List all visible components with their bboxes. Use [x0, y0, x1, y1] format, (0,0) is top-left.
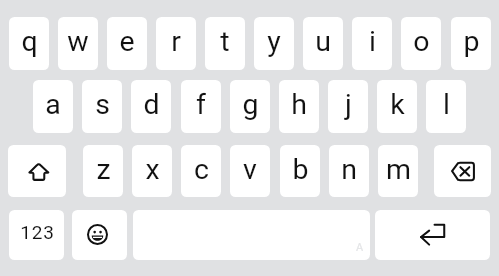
button[interactable]: a [33, 80, 73, 133]
staticText: e [119, 25, 135, 58]
staticText: 123 [20, 221, 55, 243]
button[interactable]: m [378, 145, 418, 197]
staticText: j [345, 88, 352, 121]
staticText: y [267, 25, 281, 58]
button[interactable]: w [58, 17, 98, 70]
button[interactable]: z [83, 145, 123, 197]
button[interactable]: v [230, 145, 270, 197]
button[interactable]: k [377, 80, 417, 133]
staticText: c [194, 153, 209, 186]
staticText: i [369, 25, 376, 58]
staticText: d [143, 88, 160, 121]
button[interactable]: n [329, 145, 369, 197]
staticText: q [21, 25, 38, 58]
button[interactable]: u [303, 17, 343, 70]
button[interactable]: c [181, 145, 221, 197]
staticText: k [390, 88, 405, 121]
button[interactable]: j [328, 80, 368, 133]
staticText: f [196, 88, 206, 121]
button[interactable]: x [132, 145, 172, 197]
staticText: g [242, 88, 259, 121]
button[interactable]: l [426, 80, 466, 133]
button[interactable]: t [205, 17, 245, 70]
button[interactable]: o [401, 17, 441, 70]
staticText: x [145, 153, 160, 186]
button[interactable]: p [451, 17, 491, 70]
button[interactable]: s [82, 80, 122, 133]
button[interactable]: r [156, 17, 196, 70]
staticText: v [243, 153, 257, 186]
staticText: u [315, 25, 331, 58]
staticText: b [292, 153, 309, 186]
button[interactable]: h [279, 80, 319, 133]
button[interactable]: b [280, 145, 320, 197]
button[interactable]: Emoji [72, 210, 127, 260]
button[interactable]: g [230, 80, 270, 133]
button[interactable]: e [107, 17, 147, 70]
button[interactable]: Return [375, 210, 490, 260]
staticText: r [171, 25, 181, 58]
staticText: a [45, 88, 61, 121]
button[interactable]: Backspace [434, 145, 491, 197]
staticText: A [356, 241, 364, 254]
staticText: w [67, 25, 89, 58]
staticText: n [341, 153, 357, 186]
staticText: s [95, 88, 110, 121]
staticText: z [96, 153, 111, 186]
staticText: p [463, 25, 480, 58]
button[interactable]: d [131, 80, 171, 133]
staticText: t [220, 25, 230, 58]
button[interactable]: Shift [8, 145, 66, 197]
staticText: m [386, 153, 411, 186]
staticText: o [413, 25, 430, 58]
button[interactable]: q [9, 17, 49, 70]
button[interactable]: i [352, 17, 392, 70]
button[interactable]: y [254, 17, 294, 70]
button[interactable]: Numbers [9, 210, 64, 260]
button[interactable]: f [181, 80, 221, 133]
staticText: h [291, 88, 307, 121]
staticText: l [443, 88, 450, 121]
